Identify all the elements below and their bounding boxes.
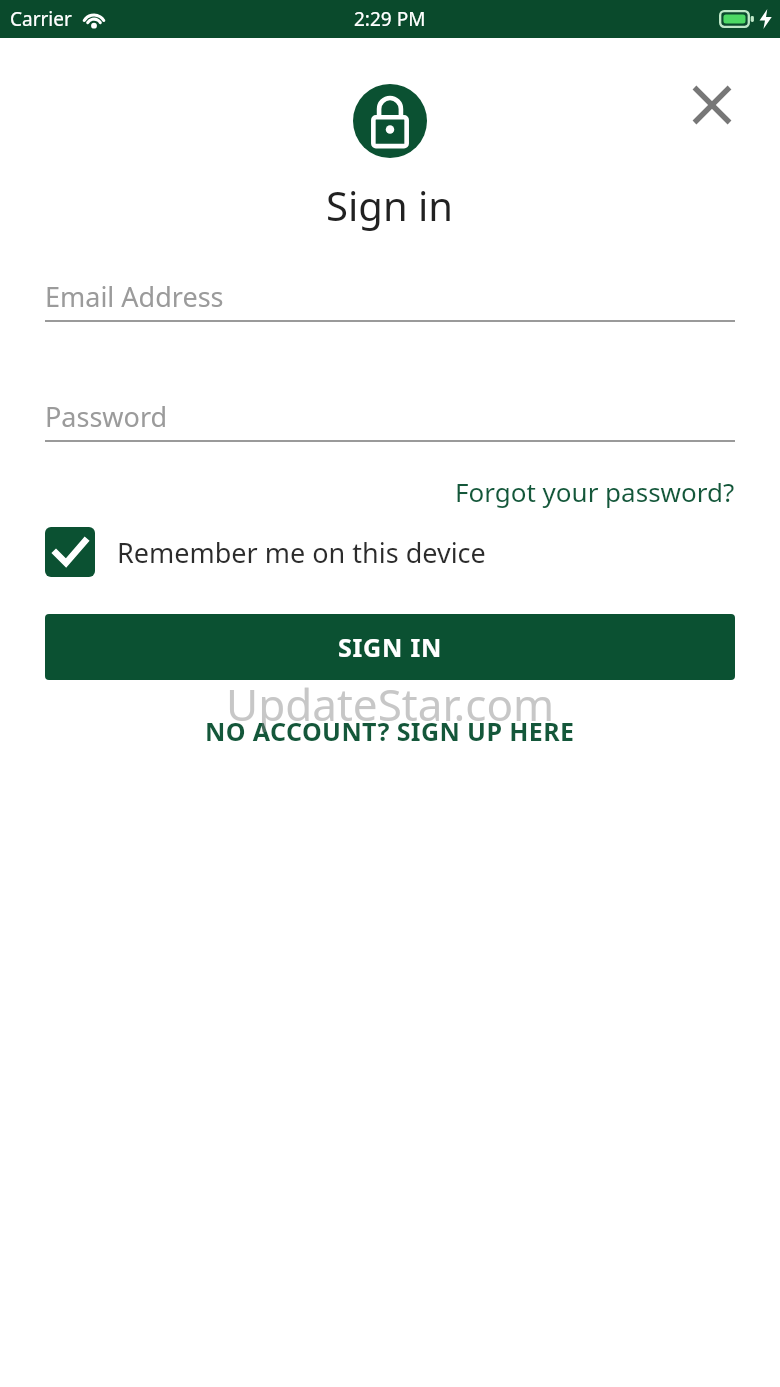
- staticText: SIGN IN: [338, 630, 443, 664]
- button[interactable]: Forgot your password?: [455, 470, 735, 513]
- button[interactable]: Remember me: [45, 527, 735, 577]
- button[interactable]: Email Address: [45, 272, 735, 320]
- button[interactable]: SIGN IN: [45, 614, 735, 680]
- button[interactable]: Password: [45, 392, 735, 440]
- staticText: Carrier: [10, 6, 72, 32]
- button[interactable]: Close: [682, 75, 742, 135]
- staticText: Password: [45, 398, 168, 435]
- button[interactable]: NO ACCOUNT? SIGN UP HERE: [205, 710, 575, 752]
- staticText: Remember me on this device: [117, 534, 486, 571]
- other: Secure: [353, 84, 427, 158]
- staticText: UpdateStar.com: [226, 674, 555, 734]
- staticText: Email Address: [45, 278, 224, 315]
- staticText: NO ACCOUNT? SIGN UP HERE: [205, 714, 575, 748]
- staticText: 2:29 PM: [354, 6, 426, 32]
- staticText: Forgot your password?: [455, 474, 735, 509]
- staticText: Sign in: [326, 178, 454, 232]
- other: Remember me: [45, 527, 95, 577]
